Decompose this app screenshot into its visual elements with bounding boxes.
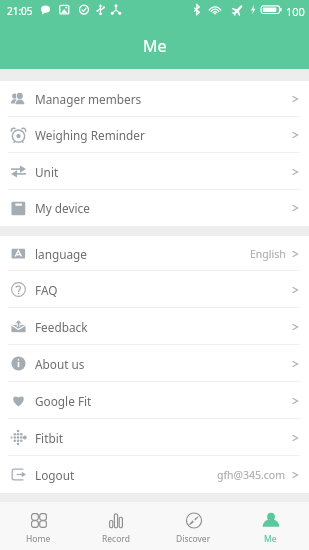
button[interactable]: Discover [155,502,232,550]
staticText: Unit [35,164,59,180]
staticText: Feedback [35,319,88,335]
staticText: 21:05 [7,4,33,18]
button[interactable]: language [0,236,309,271]
button[interactable]: Me [232,502,309,550]
button[interactable]: Fitbit [0,419,309,456]
staticText: My device [35,200,90,216]
button[interactable]: Unit [0,153,309,190]
staticText: Discover [176,533,211,545]
staticText: language [35,246,88,262]
staticText: Fitbit [35,430,63,446]
button[interactable]: My device [0,190,309,226]
button[interactable]: Google Fit [0,382,309,419]
staticText: FAQ [35,282,58,298]
staticText: Record [102,533,130,545]
staticText: Manager members [35,91,142,107]
staticText: Me [264,533,277,545]
button[interactable]: Manager members [0,81,309,117]
other: Home [31,513,47,529]
button[interactable]: Weighing Reminder [0,117,309,153]
button[interactable]: Logout [0,456,309,493]
other: Discover [186,513,202,529]
staticText: 100 [286,4,305,19]
button[interactable]: Home [0,502,77,550]
staticText: Weighing Reminder [35,127,145,143]
other: Record [108,513,124,529]
staticText: Logout [35,467,75,483]
other: Me [263,513,279,529]
button[interactable]: Feedback [0,308,309,345]
button[interactable]: About us [0,345,309,382]
staticText: English [250,247,286,261]
staticText: Google Fit [35,393,92,409]
button[interactable]: FAQ [0,271,309,308]
staticText: Me [143,35,167,57]
staticText: About us [35,356,85,372]
button[interactable]: Record [77,502,154,550]
staticText: gfh@345.com [217,468,286,482]
staticText: Home [26,533,51,545]
